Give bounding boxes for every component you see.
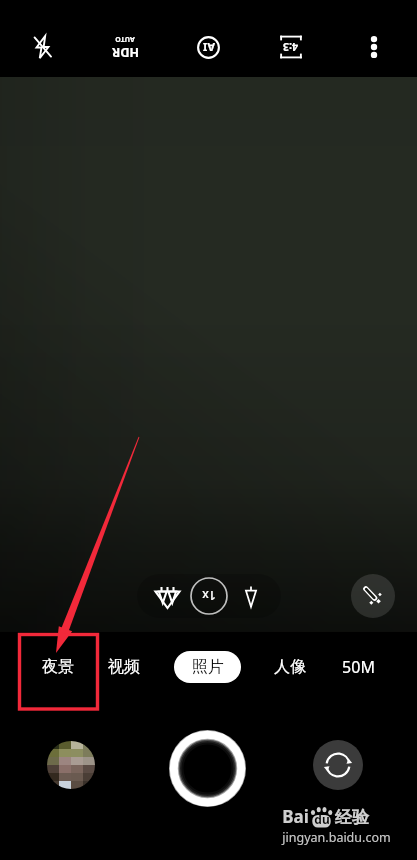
button[interactable]: Gallery	[47, 741, 95, 789]
button[interactable]: More settings	[351, 24, 397, 70]
staticText: 夜景	[42, 657, 74, 677]
button[interactable]: Ultra wide	[147, 576, 187, 616]
staticText: AI	[203, 40, 215, 55]
staticText: 50M	[342, 656, 375, 678]
staticText: jingyan.baidu.com	[282, 829, 391, 846]
button[interactable]: 视频	[88, 632, 160, 702]
button[interactable]: Switch camera	[313, 740, 363, 790]
button[interactable]: Flash off	[20, 24, 66, 70]
staticText: 人像	[274, 657, 306, 677]
button[interactable]: 1x zoom	[189, 576, 229, 616]
staticText: 照片	[192, 657, 224, 677]
staticText: 1x	[202, 588, 216, 604]
staticText: du	[314, 811, 330, 827]
staticText: 4:3	[283, 40, 298, 54]
button[interactable]: AI scene detection	[185, 24, 231, 70]
button[interactable]: Filters	[351, 574, 395, 618]
button[interactable]: 50M	[322, 632, 394, 702]
staticText: AUTO	[115, 34, 135, 44]
button[interactable]: Telephoto	[231, 576, 271, 616]
button[interactable]: HDR auto	[102, 24, 148, 70]
button[interactable]: Shutter	[169, 730, 246, 807]
staticText: 视频	[108, 657, 140, 677]
button[interactable]: 人像	[254, 632, 326, 702]
button[interactable]: 夜景	[22, 632, 94, 702]
staticText: 经验	[335, 807, 369, 828]
staticText: HDR	[112, 44, 139, 61]
button[interactable]: Aspect ratio 4:3	[268, 24, 314, 70]
button[interactable]: 照片	[171, 632, 243, 702]
staticText: Bai	[282, 805, 309, 828]
